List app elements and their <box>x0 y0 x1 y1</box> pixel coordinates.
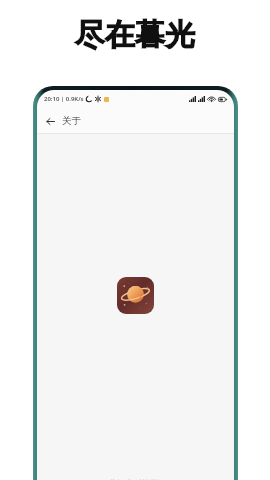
staticText: 关于 <box>62 115 81 127</box>
staticText: 20:10 | 0.9K/s <box>44 95 84 103</box>
button[interactable]: App icon <box>117 277 154 314</box>
staticText: 暮光下载器 版权所有 <box>110 478 161 480</box>
button[interactable]: Back <box>41 112 59 130</box>
staticText: 尽在暮光 <box>75 16 195 54</box>
